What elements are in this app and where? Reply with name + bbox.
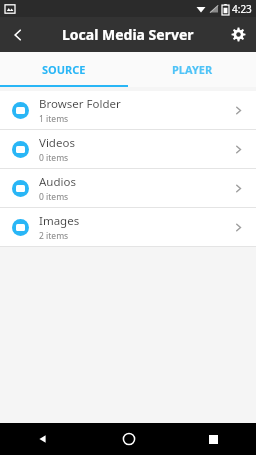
staticText: Images xyxy=(39,213,80,229)
button[interactable]: Home xyxy=(86,423,171,455)
staticText: PLAYER xyxy=(172,62,213,77)
button[interactable]: Back xyxy=(0,423,86,455)
staticText: 1 items xyxy=(39,113,69,125)
staticText: Browser Folder xyxy=(39,96,121,112)
button[interactable]: Images xyxy=(0,208,256,246)
button[interactable]: SOURCE xyxy=(0,52,128,87)
button[interactable]: Back xyxy=(0,17,35,52)
button[interactable]: Browser Folder xyxy=(0,91,256,129)
staticText: Videos xyxy=(39,135,75,151)
staticText: Local Media Server xyxy=(62,25,194,44)
staticText: 2 items xyxy=(39,230,69,242)
staticText: Audios xyxy=(39,174,76,190)
button[interactable]: Recent apps xyxy=(171,423,256,455)
staticText: SOURCE xyxy=(42,62,86,77)
staticText: 4:23 xyxy=(232,2,252,16)
button[interactable]: Settings xyxy=(221,17,256,52)
staticText: 0 items xyxy=(39,191,69,203)
button[interactable]: PLAYER xyxy=(128,52,256,87)
staticText: 0 items xyxy=(39,152,69,164)
button[interactable]: Audios xyxy=(0,169,256,207)
button[interactable]: Videos xyxy=(0,130,256,168)
